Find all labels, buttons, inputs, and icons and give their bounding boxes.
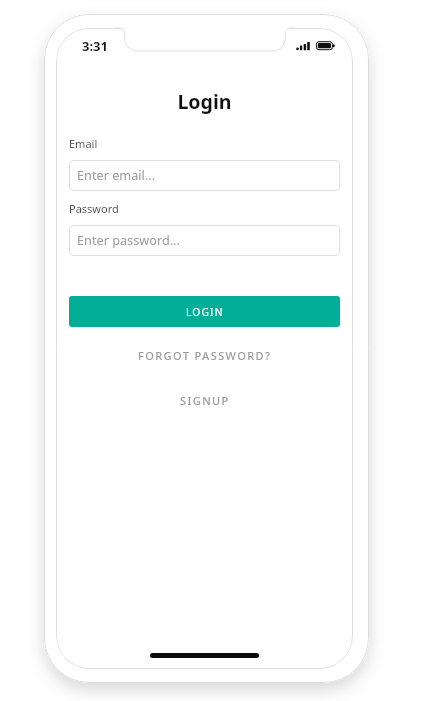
button[interactable]: Email input [69, 160, 340, 191]
button[interactable]: SIGNUP [69, 390, 340, 410]
staticText: Enter password... [77, 231, 180, 248]
other: Home indicator [150, 653, 259, 658]
button[interactable]: FORGOT PASSWORD? [69, 345, 340, 365]
staticText: FORGOT PASSWORD? [138, 348, 272, 363]
button[interactable]: Password input [69, 225, 340, 256]
staticText: LOGIN [186, 305, 224, 319]
staticText: Enter email... [77, 166, 156, 183]
button[interactable]: LOGIN [69, 296, 340, 327]
staticText: Email [69, 136, 98, 151]
staticText: 3:31 [82, 37, 108, 55]
other: Cellular signal and battery status [296, 40, 338, 52]
staticText: Password [69, 201, 119, 216]
staticText: SIGNUP [180, 393, 230, 408]
staticText: Login [56, 88, 353, 115]
